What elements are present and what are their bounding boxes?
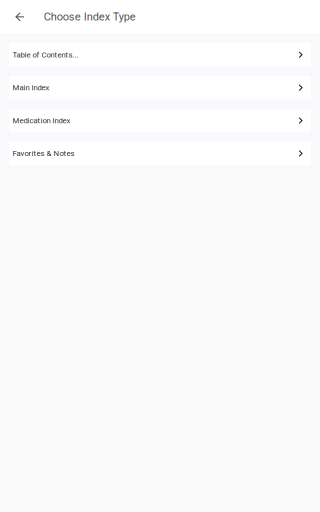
button[interactable]: Table of Contents... bbox=[9, 43, 311, 66]
staticText: Table of Contents... bbox=[13, 50, 79, 59]
staticText: Choose Index Type bbox=[44, 10, 136, 23]
staticText: Favorites & Notes bbox=[13, 149, 75, 158]
button[interactable]: Main Index bbox=[9, 76, 311, 99]
staticText: Main Index bbox=[13, 83, 50, 92]
button[interactable]: Back bbox=[0, 0, 40, 34]
staticText: Medication Index bbox=[13, 116, 71, 125]
button[interactable]: Medication Index bbox=[9, 109, 311, 132]
button[interactable]: Favorites & Notes bbox=[9, 142, 311, 165]
